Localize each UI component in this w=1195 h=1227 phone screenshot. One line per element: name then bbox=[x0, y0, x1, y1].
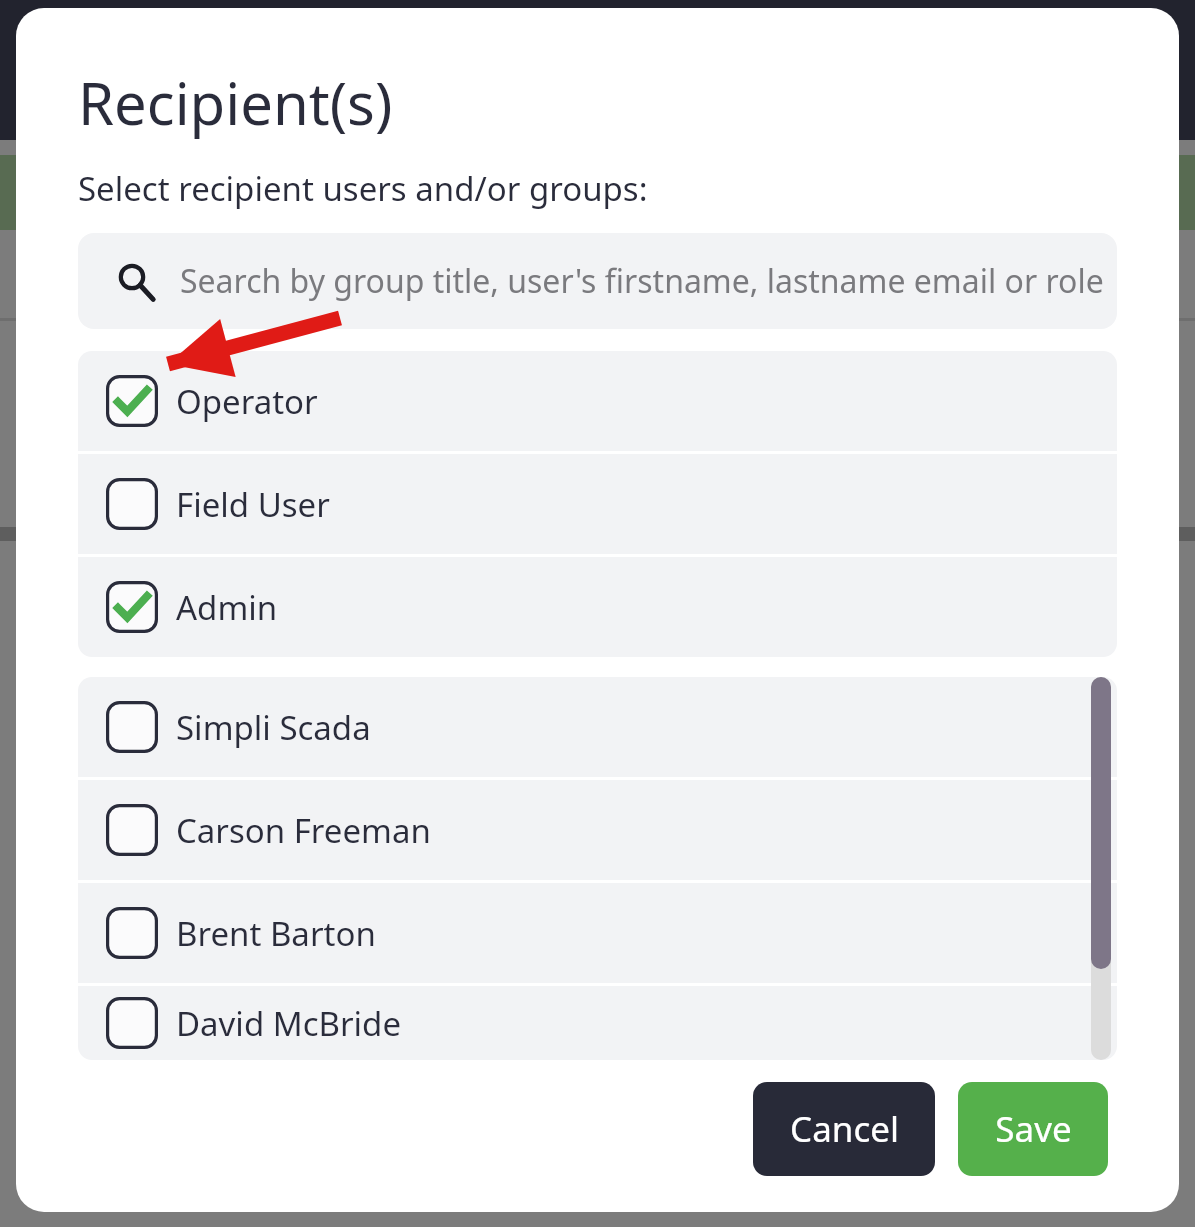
other: Search bbox=[116, 261, 156, 301]
button[interactable]: Save bbox=[958, 1082, 1108, 1176]
staticText: Carson Freeman bbox=[176, 808, 431, 853]
button[interactable]: Cancel bbox=[753, 1082, 935, 1176]
staticText: Select recipient users and/or groups: bbox=[78, 166, 648, 211]
staticText: Simpli Scada bbox=[176, 705, 371, 750]
staticText: Admin bbox=[176, 585, 278, 630]
staticText: Field User bbox=[176, 482, 330, 527]
button[interactable]: Brent Barton bbox=[78, 883, 1117, 983]
button[interactable]: David McBride bbox=[78, 986, 1117, 1060]
staticText: Operator bbox=[176, 379, 318, 424]
button[interactable]: Carson Freeman bbox=[78, 780, 1117, 880]
staticText: Save bbox=[995, 1105, 1072, 1153]
staticText: Cancel bbox=[790, 1105, 899, 1153]
staticText: d bbox=[1157, 168, 1182, 222]
button[interactable]: Search bbox=[78, 233, 1117, 329]
button[interactable]: Field User bbox=[78, 454, 1117, 554]
staticText: Search by group title, user's firstname,… bbox=[180, 259, 1104, 303]
button[interactable]: Operator bbox=[78, 351, 1117, 451]
staticText: David McBride bbox=[176, 1001, 402, 1046]
staticText: Recipient(s) bbox=[78, 63, 393, 142]
button[interactable]: Admin bbox=[78, 557, 1117, 657]
staticText: Brent Barton bbox=[176, 911, 376, 956]
button[interactable]: Simpli Scada bbox=[78, 677, 1117, 777]
